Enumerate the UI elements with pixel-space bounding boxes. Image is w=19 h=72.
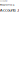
staticText: Accounts 1 (0, 0, 8, 2)
staticText: Accounts 3 (0, 7, 19, 13)
staticText: Accounts 2 (0, 3, 15, 6)
